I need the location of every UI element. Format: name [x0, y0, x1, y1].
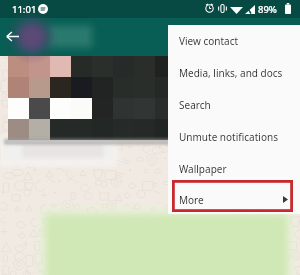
button[interactable]: View contact [168, 25, 300, 57]
button[interactable]: Search [168, 89, 300, 121]
staticText: Media, links, and docs [179, 66, 283, 80]
staticText: More [179, 193, 204, 207]
staticText: 11:01 [12, 3, 37, 16]
staticText: 89% [258, 3, 277, 16]
button[interactable]: Media, links, and docs [168, 57, 300, 89]
button[interactable]: Back [1, 25, 24, 48]
button[interactable]: More [168, 185, 300, 214]
staticText: Wallpaper [179, 162, 227, 176]
staticText: View contact [179, 34, 239, 48]
staticText: Unmute notifications [179, 130, 278, 144]
staticText: Search [179, 98, 211, 112]
button[interactable]: Unmute notifications [168, 121, 300, 153]
button[interactable]: Wallpaper [168, 153, 300, 185]
